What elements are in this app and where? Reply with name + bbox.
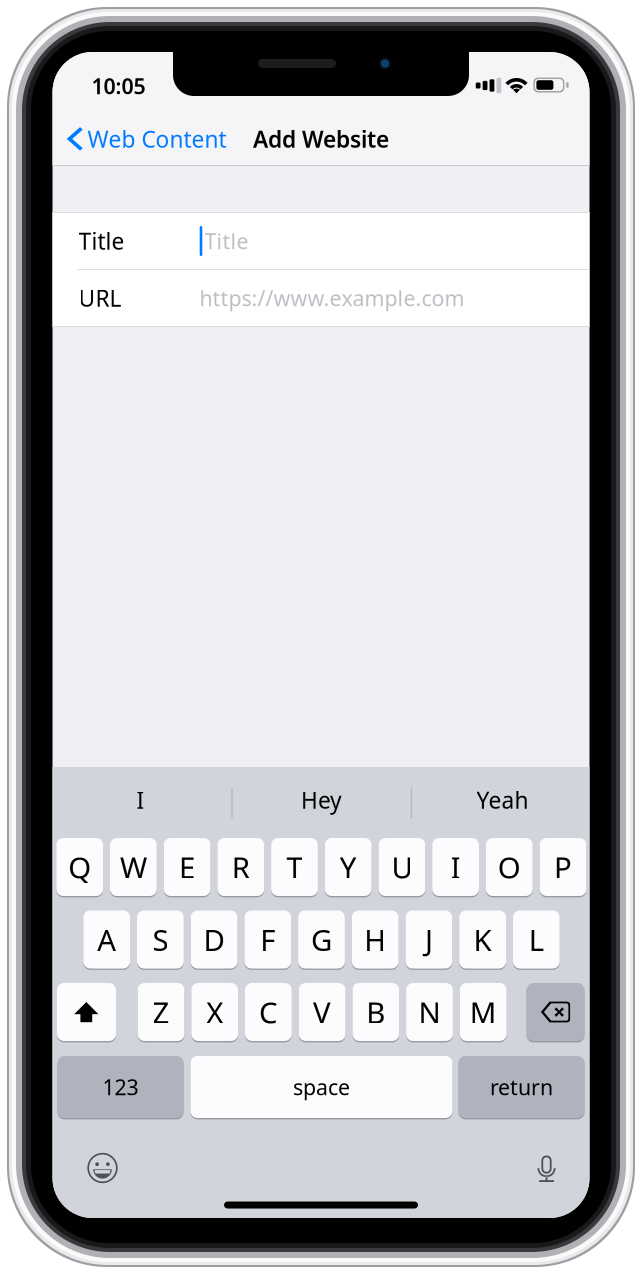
staticText: S	[152, 920, 168, 959]
button[interactable]: U	[378, 837, 425, 897]
button[interactable]: L	[513, 909, 560, 969]
staticText: Q	[68, 847, 91, 886]
button[interactable]: Dictation	[534, 1154, 558, 1183]
staticText: C	[259, 992, 278, 1031]
button[interactable]: K	[459, 909, 506, 969]
button[interactable]: G	[298, 909, 345, 969]
button[interactable]: H	[352, 909, 399, 969]
button[interactable]: R	[217, 837, 264, 897]
staticText: G	[311, 920, 332, 959]
staticText: Hey	[301, 785, 342, 815]
staticText: T	[286, 847, 302, 886]
staticText: A	[97, 920, 116, 959]
staticText: return	[490, 1073, 553, 1101]
button[interactable]: E	[164, 837, 210, 897]
button[interactable]: C	[245, 982, 292, 1042]
staticText: U	[391, 847, 412, 886]
staticText: Web Content	[87, 124, 226, 154]
staticText: I	[136, 785, 144, 815]
staticText: 123	[102, 1073, 138, 1101]
button[interactable]: X	[191, 982, 238, 1042]
button[interactable]: W	[110, 837, 157, 897]
staticText: N	[418, 992, 440, 1031]
staticText: Add Website	[253, 124, 389, 154]
staticText: I	[451, 847, 461, 886]
button[interactable]: J	[405, 909, 452, 969]
staticText: Y	[340, 847, 357, 886]
staticText: O	[498, 847, 521, 886]
staticText: 10:05	[91, 72, 145, 100]
staticText: V	[313, 992, 331, 1031]
button[interactable]: D	[191, 909, 237, 969]
button[interactable]: 123	[57, 1055, 183, 1119]
button[interactable]: B	[352, 982, 399, 1042]
button[interactable]: V	[299, 982, 345, 1042]
staticText: URL	[78, 283, 121, 313]
button[interactable]: N	[406, 982, 453, 1042]
staticText: K	[474, 920, 492, 959]
button[interactable]: return	[458, 1055, 584, 1119]
button[interactable]: Yeah	[413, 767, 591, 833]
button[interactable]: Shift	[57, 982, 116, 1042]
button[interactable]: Hey	[232, 767, 410, 833]
button[interactable]: P	[540, 837, 586, 897]
staticText: M	[470, 992, 497, 1031]
staticText: L	[529, 920, 544, 959]
button[interactable]: URL	[52, 269, 589, 326]
button[interactable]: Q	[56, 837, 103, 897]
button[interactable]: space	[190, 1055, 452, 1119]
button[interactable]: Z	[138, 982, 184, 1042]
button[interactable]: Emoji	[86, 1152, 118, 1184]
staticText: space	[293, 1073, 350, 1101]
button[interactable]: A	[83, 909, 130, 969]
staticText: https://www.example.com	[199, 284, 464, 312]
staticText: Title	[204, 227, 248, 255]
staticText: F	[260, 920, 275, 959]
staticText: Yeah	[476, 785, 528, 815]
button[interactable]: Title	[52, 212, 589, 269]
staticText: B	[366, 992, 385, 1031]
button[interactable]: I	[432, 837, 479, 897]
staticText: W	[120, 847, 147, 886]
staticText: E	[179, 847, 195, 886]
staticText: J	[425, 920, 433, 959]
staticText: P	[554, 847, 572, 886]
staticText: R	[232, 847, 250, 886]
button[interactable]: Delete	[526, 982, 584, 1042]
button[interactable]: T	[271, 837, 318, 897]
button[interactable]: I	[51, 767, 229, 833]
button[interactable]: M	[460, 982, 507, 1042]
button[interactable]: Y	[325, 837, 372, 897]
button[interactable]: S	[137, 909, 184, 969]
button[interactable]: F	[244, 909, 291, 969]
staticText: Z	[152, 992, 169, 1031]
staticText: Title	[78, 226, 124, 256]
button[interactable]: Web Content	[50, 114, 236, 164]
button[interactable]: O	[486, 837, 533, 897]
staticText: D	[204, 920, 225, 959]
staticText: X	[206, 992, 223, 1031]
staticText: H	[364, 920, 386, 959]
